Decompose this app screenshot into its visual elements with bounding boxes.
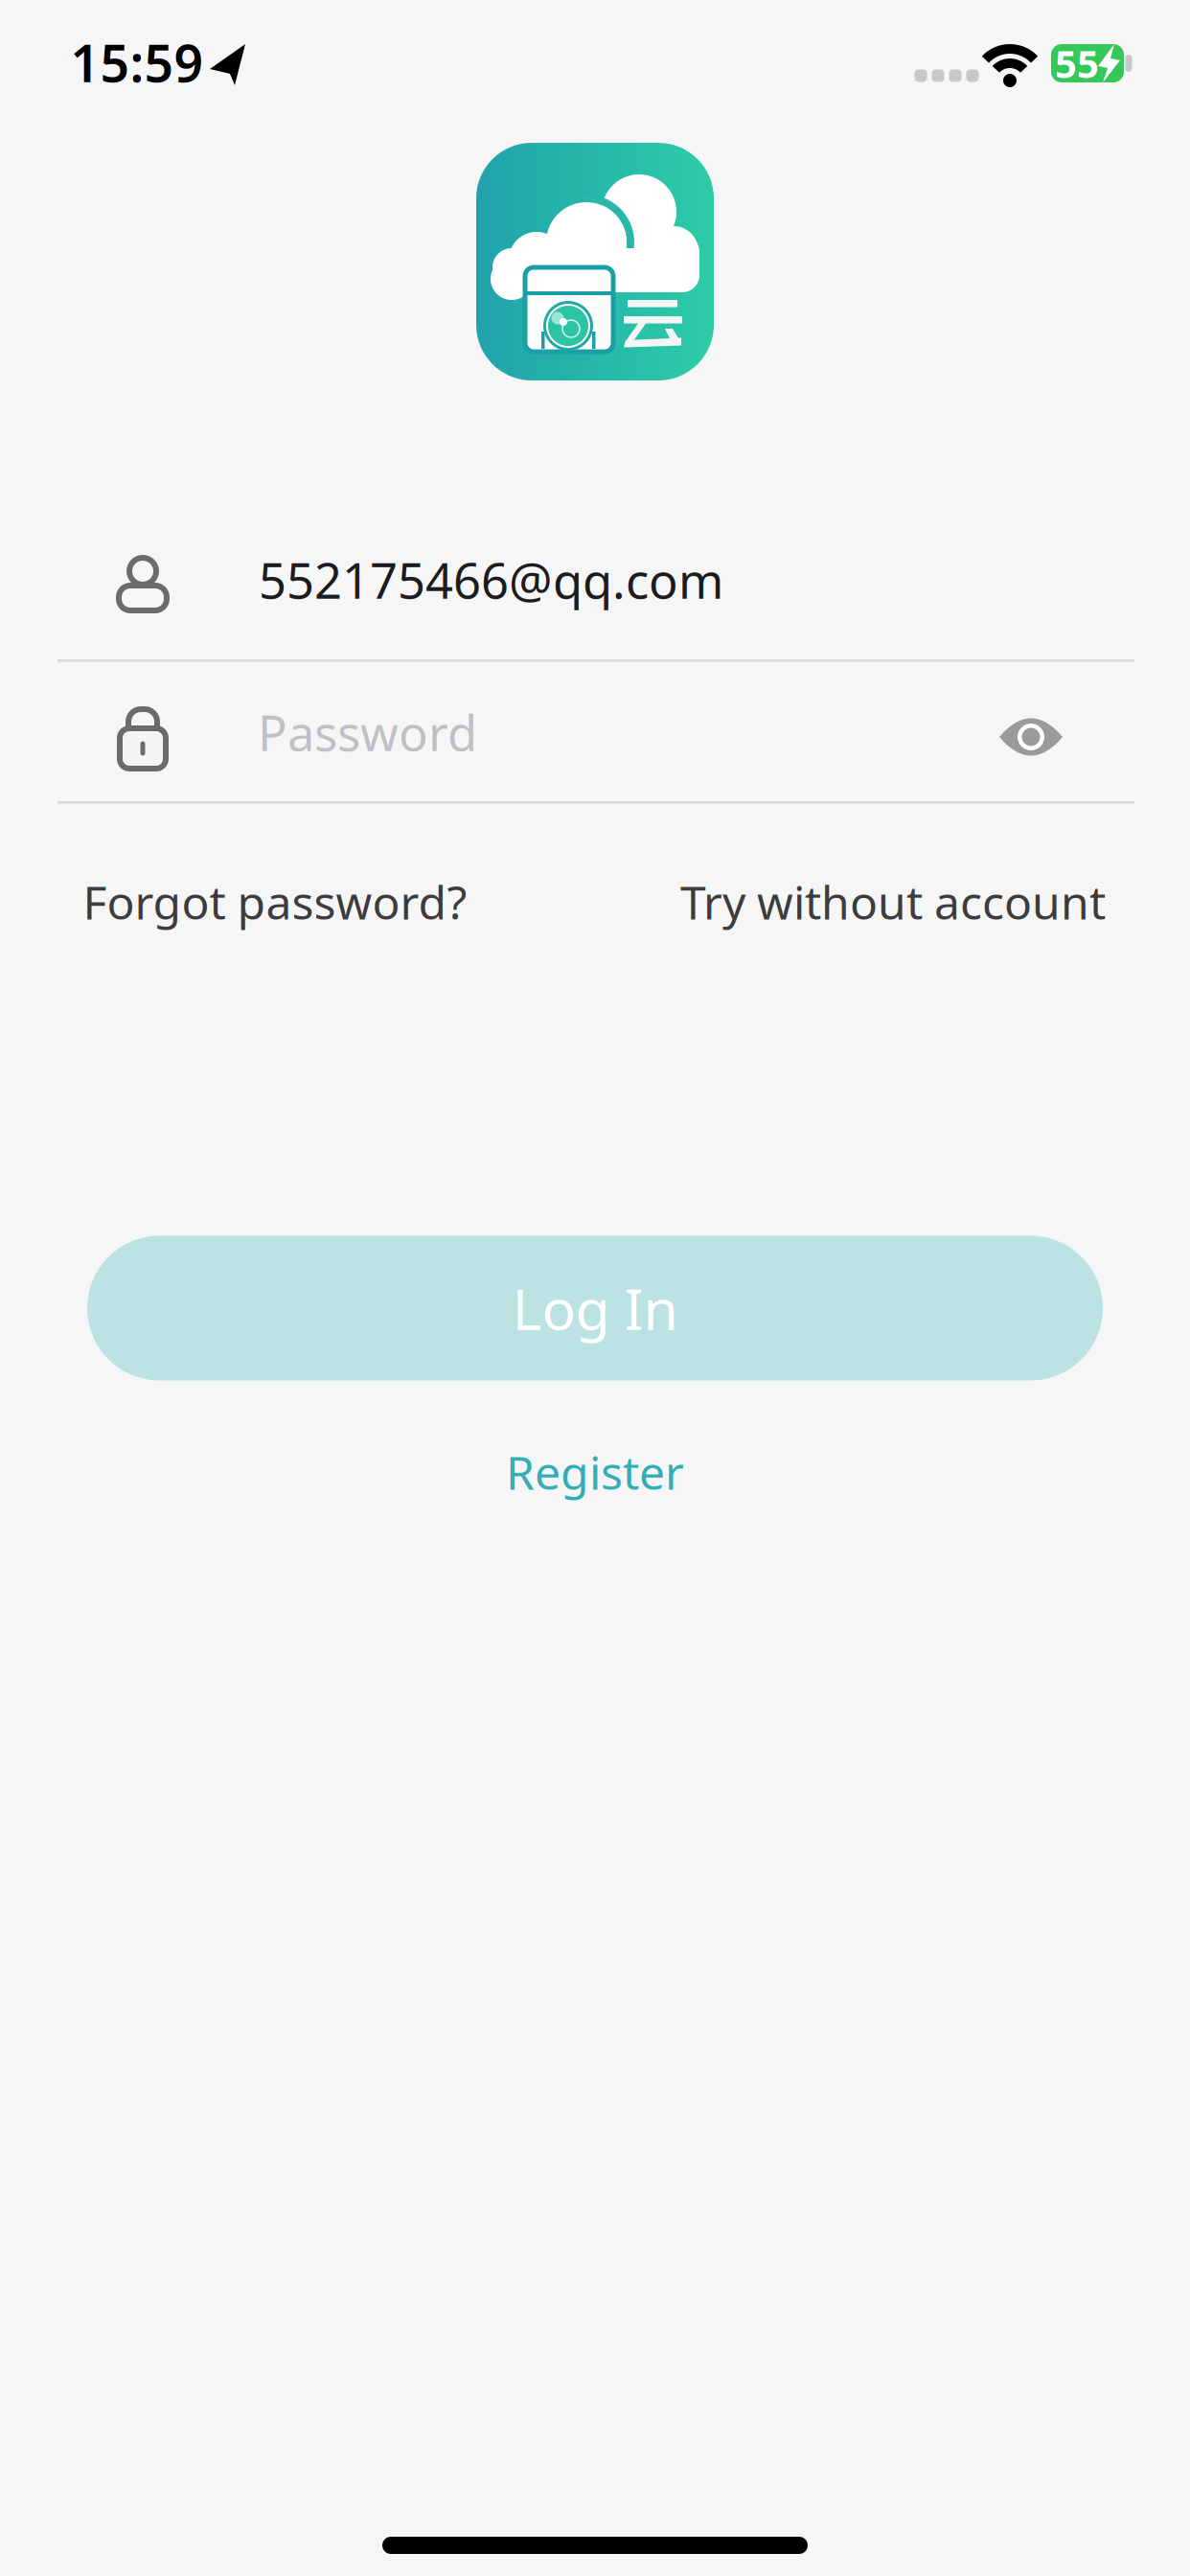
button[interactable]: Show password: [999, 715, 1063, 759]
staticText: Register: [506, 1441, 684, 1502]
button[interactable]: Forgot password?: [83, 871, 467, 932]
staticText: Forgot password?: [83, 871, 467, 932]
staticText: 15:59: [70, 28, 204, 96]
staticText: 552175466@qq.com: [259, 548, 723, 612]
staticText: 55: [1055, 38, 1099, 89]
button[interactable]: Log In: [87, 1236, 1103, 1380]
staticText: Password: [258, 700, 477, 764]
staticText: Try without account: [680, 871, 1106, 932]
button[interactable]: Register: [506, 1441, 684, 1502]
staticText: Log In: [512, 1271, 678, 1345]
button[interactable]: Try without account: [680, 871, 1106, 932]
